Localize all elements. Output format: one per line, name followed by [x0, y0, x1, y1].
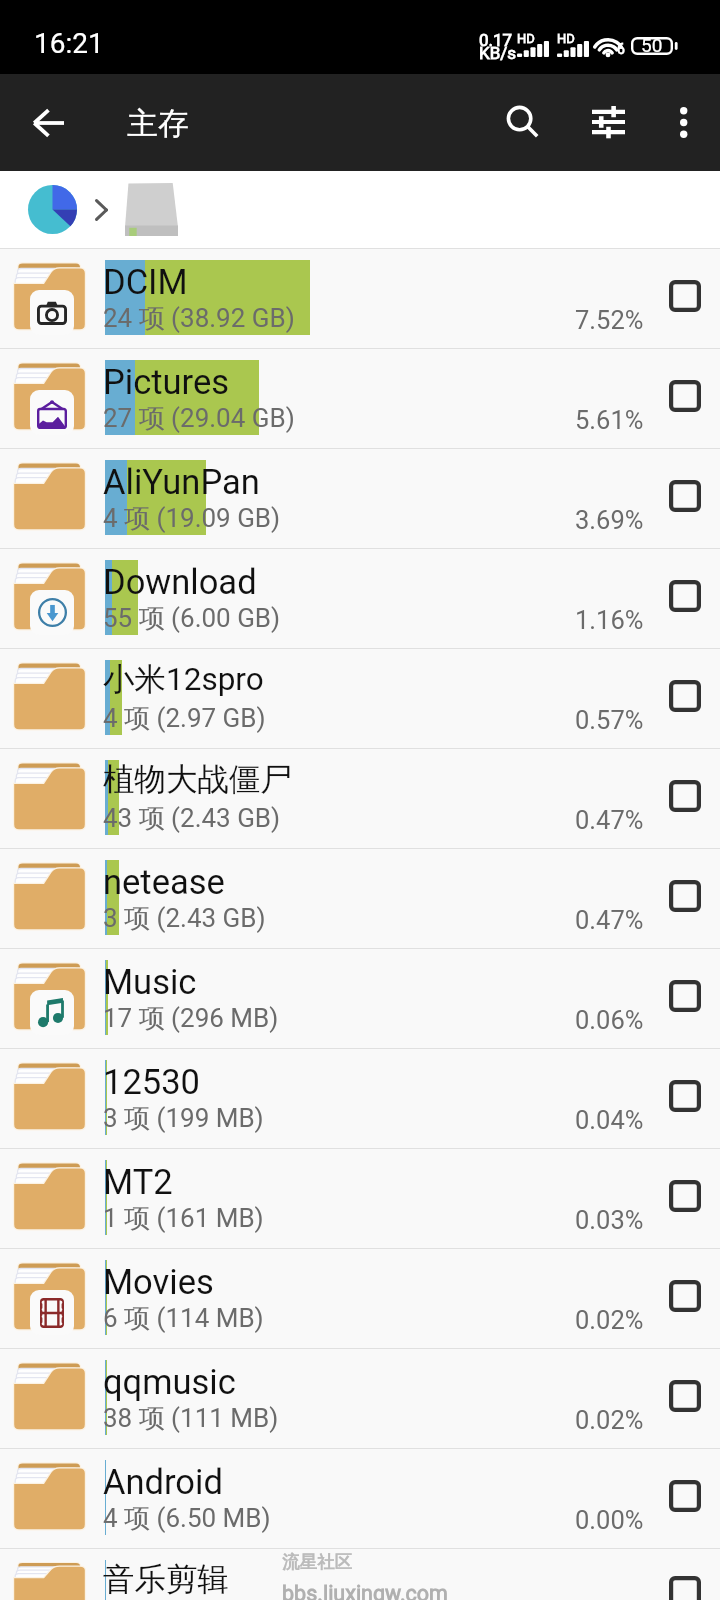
button[interactable]: Search [484, 83, 563, 162]
button[interactable]: Storage overview [24, 181, 81, 238]
staticText: 17 项 (296 MB) [103, 1002, 279, 1035]
staticText: 4 项 (6.50 MB) [103, 1502, 271, 1535]
staticText: 0.02% [575, 1305, 644, 1335]
staticText: 12530 [103, 1062, 200, 1102]
staticText: 27 项 (29.04 GB) [103, 402, 295, 435]
staticText: 50 [641, 34, 663, 56]
button[interactable]: MT2 [0, 1149, 720, 1249]
button[interactable]: Select Music [655, 966, 715, 1026]
staticText: 植物大战僵尸 [103, 760, 292, 800]
staticText: 4 项 (19.09 GB) [103, 502, 281, 535]
button[interactable]: Select qqmusic [655, 1366, 715, 1426]
staticText: 0.06% [575, 1005, 644, 1035]
staticText: Movies [103, 1262, 214, 1302]
button[interactable]: Select DCIM [655, 266, 715, 326]
button[interactable]: Select 小米12spro [655, 666, 715, 726]
staticText: 音乐剪辑 [103, 1560, 229, 1600]
staticText: netease [103, 862, 225, 902]
button[interactable]: Select 植物大战僵尸 [655, 766, 715, 826]
staticText: HD [517, 31, 535, 46]
staticText: 4 项 (2.97 GB) [103, 702, 266, 735]
staticText: bbs.liuxingw.com [282, 1581, 448, 1600]
staticText: AliYunPan [103, 462, 260, 502]
staticText: Music [103, 962, 197, 1002]
staticText: 0.47% [575, 805, 644, 835]
button[interactable]: Sort and filter [568, 82, 648, 162]
button[interactable]: Select AliYunPan [655, 466, 715, 526]
button[interactable]: netease [0, 849, 720, 949]
staticText: 6 [617, 41, 625, 57]
staticText: DCIM [103, 262, 188, 302]
button[interactable]: Pictures [0, 349, 720, 449]
staticText: 0.03% [575, 1205, 644, 1235]
staticText: 0.47% [575, 905, 644, 935]
staticText: 16:21 [34, 27, 104, 60]
staticText: Android [103, 1462, 223, 1502]
staticText: KB/s [479, 43, 517, 63]
button[interactable]: 12530 [0, 1049, 720, 1149]
staticText: 5.61% [575, 405, 644, 435]
staticText: 流星社区 [282, 1551, 352, 1573]
button[interactable]: Download [0, 549, 720, 649]
staticText: Download [103, 562, 257, 602]
button[interactable]: qqmusic [0, 1349, 720, 1449]
button[interactable]: Select Download [655, 566, 715, 626]
staticText: 3 项 (199 MB) [103, 1102, 264, 1135]
button[interactable]: Back [8, 84, 88, 161]
staticText: 55 项 (6.00 GB) [103, 602, 281, 635]
staticText: 0.00% [575, 1505, 644, 1535]
staticText: qqmusic [103, 1362, 236, 1402]
button[interactable]: 音乐剪辑 [0, 1549, 720, 1600]
button[interactable]: More options [642, 82, 720, 162]
button[interactable]: Android [0, 1449, 720, 1549]
staticText: 0.57% [575, 705, 644, 735]
button[interactable]: Internal storage [120, 178, 182, 240]
button[interactable]: Select MT2 [655, 1166, 715, 1226]
button[interactable]: Select Pictures [655, 366, 715, 426]
staticText: 0.17 [479, 30, 513, 50]
button[interactable]: Movies [0, 1249, 720, 1349]
staticText: 1 项 (161 MB) [103, 1202, 264, 1235]
staticText: 1.16% [575, 605, 644, 635]
button[interactable]: DCIM [0, 249, 720, 349]
button[interactable]: Music [0, 949, 720, 1049]
button[interactable]: Select Movies [655, 1266, 715, 1326]
staticText: 小米12spro [103, 660, 264, 700]
staticText: Pictures [103, 362, 229, 402]
staticText: 主存 [127, 104, 189, 143]
staticText: 43 项 (2.43 GB) [103, 802, 281, 835]
staticText: 24 项 (38.92 GB) [103, 302, 295, 335]
staticText: 7.52% [575, 305, 644, 335]
button[interactable]: Select Android [655, 1466, 715, 1526]
staticText: HD [557, 31, 575, 46]
button[interactable]: Select 音乐剪辑 [655, 1566, 715, 1600]
button[interactable]: AliYunPan [0, 449, 720, 549]
button[interactable]: 植物大战僵尸 [0, 749, 720, 849]
staticText: 3.69% [575, 505, 644, 535]
staticText: 0.04% [575, 1105, 644, 1135]
staticText: 3 项 (2.43 GB) [103, 902, 266, 935]
staticText: 38 项 (111 MB) [103, 1402, 279, 1435]
staticText: 6 项 (114 MB) [103, 1302, 264, 1335]
button[interactable]: Select 12530 [655, 1066, 715, 1126]
staticText: MT2 [103, 1162, 173, 1202]
staticText: 0.02% [575, 1405, 644, 1435]
button[interactable]: 小米12spro [0, 649, 720, 749]
button[interactable]: Select netease [655, 866, 715, 926]
